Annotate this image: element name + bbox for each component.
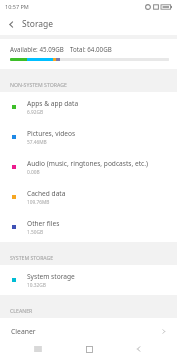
staticText: Cached data: [27, 189, 66, 198]
staticText: Total: 64.00GB: [70, 45, 112, 53]
staticText: 6.92GB: [27, 109, 44, 116]
button[interactable]: Apps & app data: [0, 92, 177, 122]
staticText: Cleaner: [11, 327, 36, 336]
staticText: Other files: [27, 219, 60, 228]
button[interactable]: Cached data: [0, 182, 177, 212]
button[interactable]: Back: [126, 344, 152, 354]
staticText: Storage: [22, 18, 54, 30]
button[interactable]: Cleaner: [0, 318, 177, 344]
button[interactable]: Back: [0, 13, 22, 35]
staticText: Available: 45.09GB: [10, 45, 64, 53]
button[interactable]: Home: [76, 344, 102, 354]
staticText: 10.32GB: [27, 282, 46, 289]
button[interactable]: Recents: [25, 344, 51, 354]
staticText: 10:57 PM: [5, 3, 29, 10]
staticText: 109.76MB: [27, 199, 50, 206]
staticText: 0.00B: [27, 169, 40, 176]
staticText: System storage: [27, 272, 75, 281]
staticText: NON-SYSTEM STORAGE: [10, 81, 67, 88]
button[interactable]: Pictures, videos: [0, 122, 177, 152]
staticText: SYSTEM STORAGE: [10, 254, 54, 261]
staticText: 57.46MB: [27, 139, 47, 146]
staticText: Pictures, videos: [27, 129, 76, 138]
button[interactable]: Audio (music, ringtones, podcasts, etc.): [0, 152, 177, 182]
staticText: 1.50GB: [27, 229, 44, 236]
staticText: CLEANER: [10, 307, 33, 314]
staticText: Audio (music, ringtones, podcasts, etc.): [27, 159, 148, 168]
button[interactable]: Other files: [0, 212, 177, 242]
button[interactable]: System storage: [0, 265, 177, 295]
staticText: Apps & app data: [27, 99, 79, 108]
